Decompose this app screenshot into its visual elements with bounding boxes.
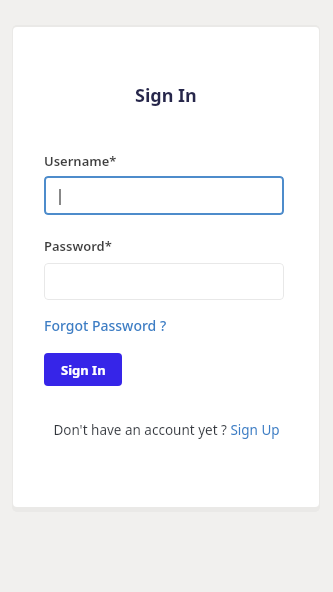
staticText: Sign In bbox=[61, 361, 106, 379]
button[interactable]: Forgot Password ? bbox=[44, 316, 167, 335]
button[interactable]: Don't have an account yet ? Sign Up bbox=[53, 421, 280, 439]
staticText: Password* bbox=[44, 237, 112, 255]
button[interactable] bbox=[44, 176, 284, 215]
button[interactable] bbox=[44, 263, 284, 300]
staticText: Sign In bbox=[135, 83, 197, 108]
button[interactable]: Sign In bbox=[44, 353, 122, 386]
staticText: Forgot Password ? bbox=[44, 316, 167, 335]
staticText: Username* bbox=[44, 152, 117, 170]
staticText: Don't have an account yet ? Sign Up bbox=[53, 421, 280, 439]
